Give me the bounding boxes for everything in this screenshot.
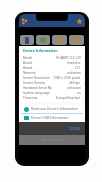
staticText: Board [23,61,33,65]
staticText: unknown [67,86,81,90]
button[interactable]: Menu [21,18,28,25]
staticText: Device's SIM Information [31,116,69,120]
staticText: 1080 x 2160 pixels [53,76,81,80]
staticText: Europe/Istanbul [56,96,81,100]
staticText: Brand [23,66,33,70]
staticText: System Language [23,91,50,95]
staticText: Screen Density [23,81,46,85]
button[interactable]: Device's SIM Information [21,114,83,123]
staticText: HUAWEI CLT-L29 [56,56,81,60]
button[interactable]: Rate [76,18,83,25]
staticText: Screen Resolution [23,76,50,80]
button[interactable]: Sensors [69,35,84,45]
staticText: Read your Device's Information [31,107,78,111]
staticText: Device Information [23,48,58,53]
staticText: charlotte [67,61,81,65]
staticText: Timezone [23,96,38,100]
staticText: Model [23,56,33,60]
staticText: Advertisement [42,138,63,142]
button[interactable]: Device [20,35,34,45]
button[interactable]: System [36,35,50,45]
button[interactable]: Battery [52,35,67,45]
staticText: 480 dpi [69,81,81,85]
staticText: CLT [75,66,81,70]
staticText: Network [23,71,36,75]
staticText: Hardware Serial No [23,86,53,90]
button[interactable]: Read your Device's Information [21,105,83,114]
staticText: unknown [67,71,81,75]
button[interactable]: CLOSE [69,126,80,131]
staticText: en [77,91,81,95]
